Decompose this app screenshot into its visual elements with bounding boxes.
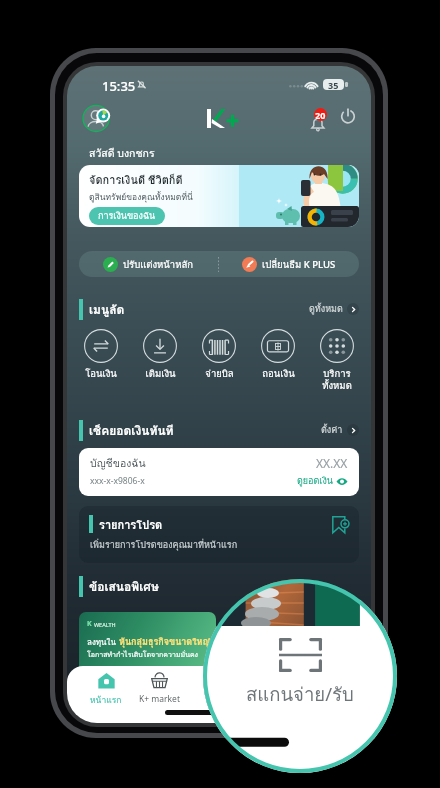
staticText: K-HIT-A(A) [87, 661, 158, 680]
button[interactable]: Profile [82, 104, 116, 138]
button[interactable]: ถอนเงิน [251, 329, 305, 381]
button[interactable]: จ่ายบิล [192, 329, 246, 381]
staticText: เมนูลัด [89, 300, 125, 319]
staticText: 15:35 [102, 77, 136, 95]
button[interactable]: เมนูลัด [79, 298, 359, 320]
button[interactable]: Notifications [305, 107, 327, 129]
staticText: บริการ ทั้งหมด [322, 366, 352, 393]
button[interactable]: ปรับแต่งหน้าหลัก [79, 251, 218, 277]
staticText: ปรับแต่งหน้าหลัก [123, 257, 194, 272]
button[interactable]: บัญชีของฉัน [79, 448, 359, 496]
staticText: เช็คยอดเงินทันที [89, 421, 174, 440]
button[interactable]: K [79, 612, 216, 697]
button[interactable]: Power [337, 105, 359, 127]
staticText: K+ market [139, 693, 180, 705]
staticText: จ่ายบิล [205, 366, 234, 381]
staticText: บัญชีของฉัน [90, 455, 146, 472]
staticText: 20 [315, 109, 326, 121]
staticText: WEALTH [94, 621, 116, 628]
staticText: ถอนเงิน [262, 366, 295, 381]
button[interactable]: เช็คยอดเงินทันที [79, 419, 359, 441]
button[interactable]: หน้าแรก [80, 671, 132, 707]
staticText: XX.XX [316, 455, 348, 471]
staticText: ลงทุนใน [87, 636, 119, 649]
button[interactable]: สแกนจ่าย/รับ [203, 579, 397, 773]
button[interactable] [224, 612, 361, 697]
staticText: ดูสินทรัพย์ของคุณทั้งหมดที่นี่ [89, 190, 193, 204]
staticText: รายการโปรด [99, 516, 163, 533]
button[interactable]: บริการ ทั้งหมด [310, 329, 364, 393]
staticText: เติมเงิน [145, 366, 176, 381]
button[interactable]: K+ market [133, 671, 185, 705]
staticText: โอนเงิน [85, 366, 117, 381]
staticText: โอกาสทำกำไรเติบโตจากความมั่นคง [87, 649, 199, 660]
staticText: สแกนจ่าย/รับ [246, 680, 354, 709]
staticText: xxx-x-x9806-x [90, 475, 145, 487]
staticText: หน้าแรก [90, 693, 122, 707]
button[interactable]: รายการโปรด [79, 506, 359, 563]
staticText: ดูยอดเงิน [297, 474, 333, 488]
staticText: ตั้งค่า [321, 423, 343, 437]
staticText: สวัสดี บงกชกร [89, 145, 155, 162]
staticText: 35 [328, 79, 339, 90]
button[interactable]: การเงินของฉัน [98, 209, 156, 223]
button[interactable]: เปลี่ยนธีม K PLUS [219, 251, 359, 277]
staticText: เปลี่ยนธีม K PLUS [262, 257, 336, 272]
button[interactable]: โอนเงิน [74, 329, 128, 381]
staticText: การเงินของฉัน [98, 209, 156, 223]
staticText: จัดการเงินดี ชีวิตก็ดี [89, 171, 183, 188]
staticText: K [87, 619, 92, 629]
staticText: เพิ่มรายการโปรดของคุณมาที่หน้าแรก [90, 538, 238, 552]
staticText: ข้อเสนอพิเศษ [89, 577, 159, 596]
button[interactable]: เติมเงิน [133, 329, 187, 381]
button[interactable]: จัดการเงินดี ชีวิตก็ดี [79, 165, 359, 227]
staticText: ดูทั้งหมด [309, 302, 343, 316]
staticText: หุ้นกลุ่มธุรกิจขนาดใหญ่ [119, 635, 211, 649]
